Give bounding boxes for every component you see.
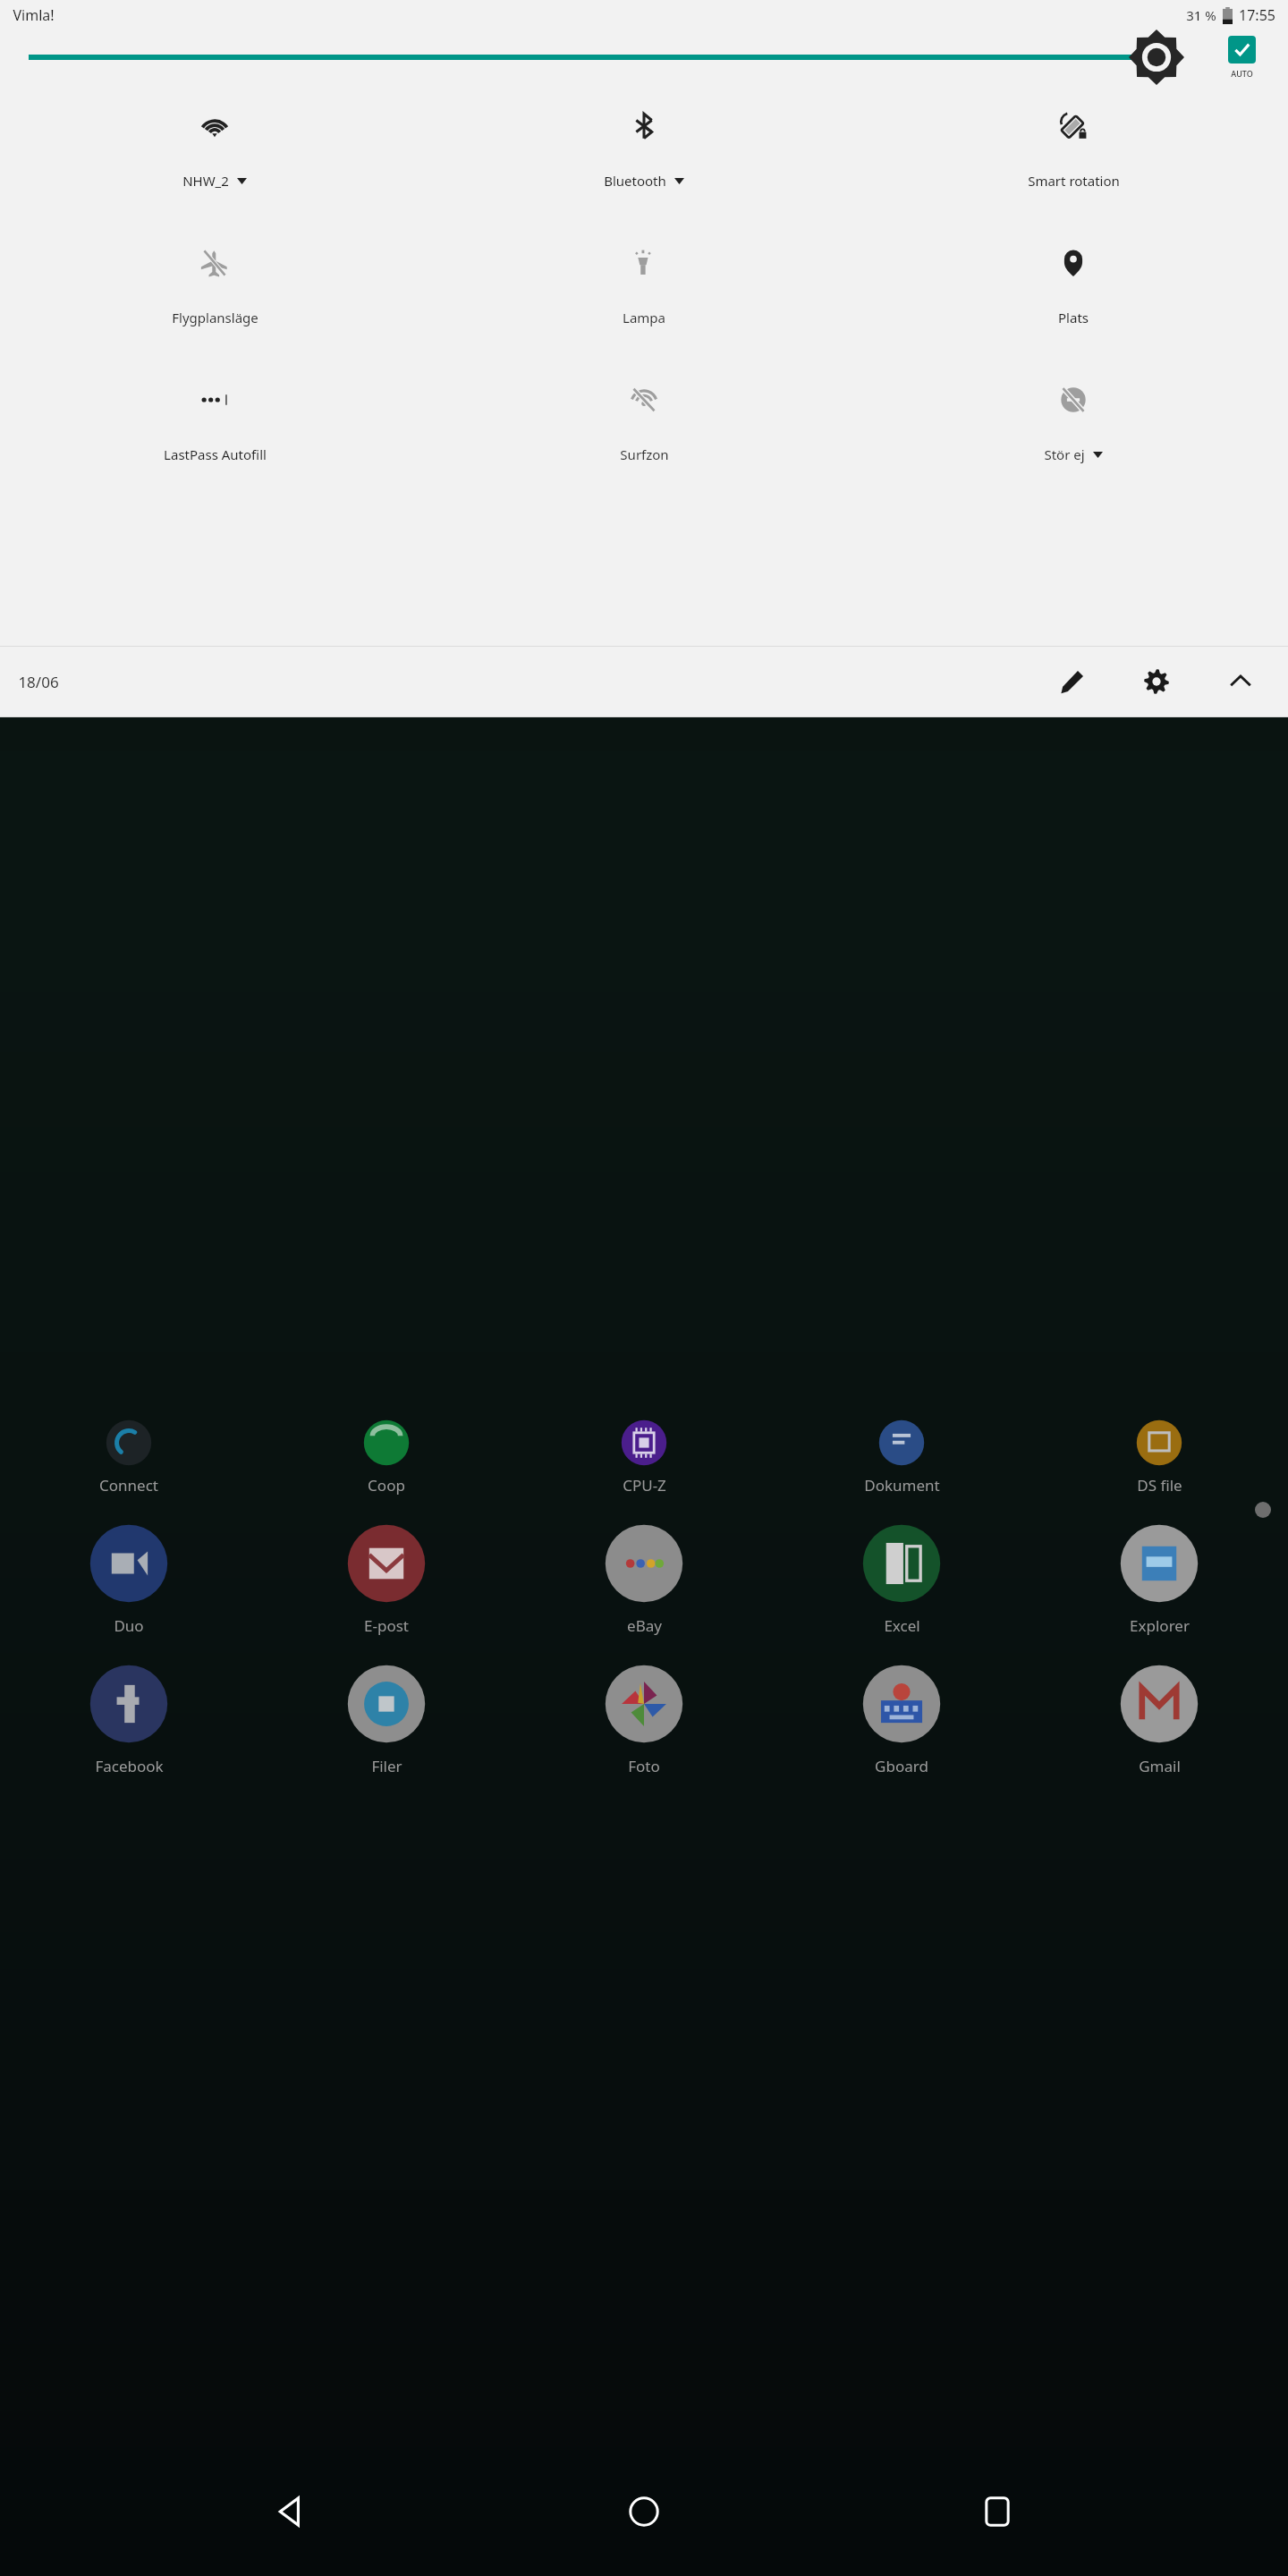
button[interactable]: CPU-Z bbox=[515, 1418, 773, 1496]
button[interactable]: Bluetooth bbox=[429, 97, 859, 200]
button[interactable]: Filer bbox=[258, 1661, 515, 1776]
staticText: Bluetooth bbox=[604, 172, 666, 190]
staticText: Plats bbox=[1058, 309, 1089, 326]
button[interactable]: NHW_2 bbox=[0, 97, 429, 200]
staticText: Gmail bbox=[1139, 1756, 1181, 1776]
staticText: CPU-Z bbox=[623, 1475, 666, 1496]
button[interactable]: Recents bbox=[935, 2449, 1060, 2574]
staticText: 31 % bbox=[1186, 6, 1216, 24]
button[interactable]: Auto brightness bbox=[1195, 30, 1288, 85]
staticText: Duo bbox=[114, 1615, 144, 1636]
staticText: Excel bbox=[884, 1615, 920, 1636]
button[interactable]: Plats bbox=[859, 234, 1288, 337]
button[interactable]: Duo bbox=[0, 1521, 258, 1636]
staticText: Filer bbox=[371, 1756, 402, 1776]
staticText: Coop bbox=[368, 1475, 405, 1496]
staticText: Lampa bbox=[623, 309, 665, 326]
button[interactable]: Lampa bbox=[429, 234, 859, 337]
button[interactable]: Gmail bbox=[1030, 1661, 1288, 1776]
staticText: Flygplansläge bbox=[172, 309, 258, 326]
staticText: eBay bbox=[627, 1615, 662, 1636]
staticText: Foto bbox=[628, 1756, 660, 1776]
button[interactable]: Connect bbox=[0, 1418, 258, 1496]
staticText: 17:55 bbox=[1239, 5, 1275, 25]
button[interactable]: Collapse bbox=[1215, 656, 1267, 708]
button[interactable]: Smart rotation bbox=[859, 97, 1288, 200]
staticText: 18/06 bbox=[18, 672, 59, 692]
button[interactable]: Edit bbox=[1046, 656, 1098, 708]
button[interactable]: Gboard bbox=[773, 1661, 1030, 1776]
staticText: Vimla! bbox=[13, 5, 55, 25]
button[interactable]: Flygplansläge bbox=[0, 234, 429, 337]
button[interactable]: E-post bbox=[258, 1521, 515, 1636]
staticText: Surfzon bbox=[620, 445, 669, 463]
button[interactable]: Back bbox=[228, 2449, 353, 2574]
button[interactable]: Facebook bbox=[0, 1661, 258, 1776]
button[interactable]: Dokument bbox=[773, 1418, 1030, 1496]
button[interactable]: Explorer bbox=[1030, 1521, 1288, 1636]
button[interactable]: DS file bbox=[1030, 1418, 1288, 1496]
staticText: AUTO bbox=[1231, 68, 1253, 79]
button[interactable]: LastPass Autofill bbox=[0, 371, 429, 474]
button[interactable]: Excel bbox=[773, 1521, 1030, 1636]
staticText: Facebook bbox=[95, 1756, 164, 1776]
button[interactable]: eBay bbox=[515, 1521, 773, 1636]
button[interactable]: Foto bbox=[515, 1661, 773, 1776]
staticText: Gboard bbox=[875, 1756, 928, 1776]
button[interactable]: Stör ej bbox=[859, 371, 1288, 474]
staticText: LastPass Autofill bbox=[164, 445, 267, 463]
button[interactable]: Surfzon bbox=[429, 371, 859, 474]
button[interactable]: Home bbox=[581, 2449, 707, 2574]
button[interactable]: Settings bbox=[1131, 656, 1182, 708]
staticText: Explorer bbox=[1130, 1615, 1190, 1636]
staticText: Stör ej bbox=[1044, 445, 1085, 463]
staticText: Smart rotation bbox=[1028, 172, 1120, 190]
button[interactable]: Coop bbox=[258, 1418, 515, 1496]
button[interactable]: Brightness bbox=[29, 30, 1186, 85]
staticText: NHW_2 bbox=[182, 172, 229, 190]
staticText: Dokument bbox=[864, 1475, 940, 1496]
staticText: Connect bbox=[99, 1475, 158, 1496]
staticText: DS file bbox=[1137, 1475, 1182, 1496]
staticText: E-post bbox=[364, 1615, 409, 1636]
